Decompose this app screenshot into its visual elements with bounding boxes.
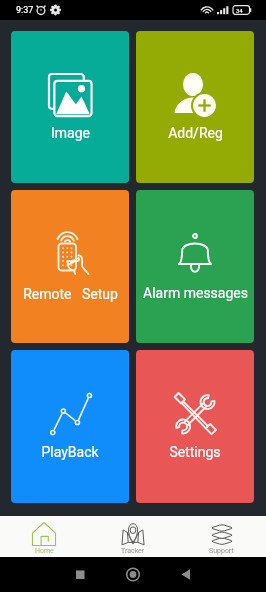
- staticText: PlayBack: [41, 444, 99, 460]
- staticText: Alarm messages: [143, 285, 248, 301]
- button[interactable]: Tracker: [88, 518, 177, 555]
- staticText: 34: [236, 7, 243, 14]
- button[interactable]: Image: [11, 31, 129, 183]
- staticText: Remote Setup: [23, 286, 118, 302]
- staticText: Add/Reg: [168, 125, 223, 141]
- button[interactable]: Alarm messages: [136, 190, 254, 343]
- button[interactable]: Add/Reg: [136, 31, 254, 183]
- staticText: 9:37: [16, 5, 34, 16]
- button[interactable]: Support: [177, 518, 266, 555]
- staticText: Support: [209, 547, 234, 555]
- staticText: Tracker: [121, 547, 145, 555]
- staticText: Home: [35, 547, 54, 555]
- button[interactable]: Home: [0, 518, 88, 555]
- button[interactable]: PlayBack: [11, 350, 129, 503]
- button[interactable]: Settings: [136, 350, 254, 503]
- button[interactable]: Remote Setup: [11, 190, 129, 343]
- staticText: Settings: [169, 444, 221, 460]
- staticText: Image: [51, 125, 90, 141]
